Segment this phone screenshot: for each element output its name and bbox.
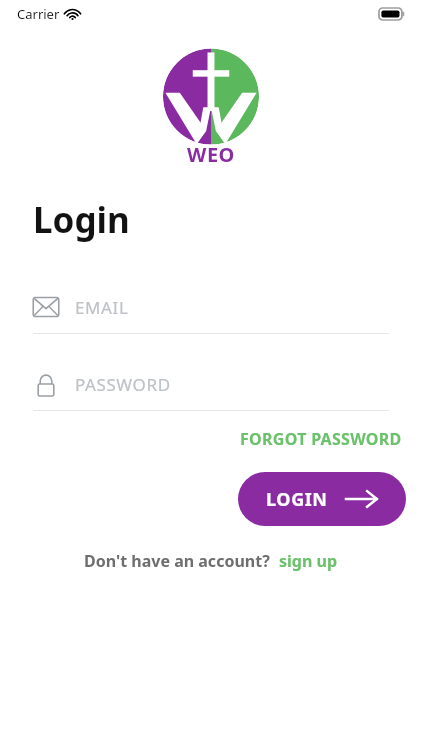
staticText: WEO xyxy=(187,141,235,168)
other: Login xyxy=(346,490,378,508)
button[interactable]: Password xyxy=(33,367,389,401)
button[interactable]: Don't have an account? xyxy=(0,550,422,572)
button[interactable]: LOGIN xyxy=(238,472,406,526)
staticText: Carrier xyxy=(17,5,60,23)
staticText: PASSWORD xyxy=(75,373,171,396)
staticText: FORGOT PASSWORD xyxy=(240,428,402,450)
staticText: Don't have an account? xyxy=(84,550,270,572)
other: Password xyxy=(33,371,59,397)
staticText: EMAIL xyxy=(75,296,129,319)
button[interactable]: FORGOT PASSWORD xyxy=(236,424,406,454)
button[interactable]: Email xyxy=(33,290,389,324)
other: Email xyxy=(33,294,59,320)
staticText: Login xyxy=(33,196,130,244)
staticText: LOGIN xyxy=(266,487,328,512)
staticText: sign up xyxy=(279,550,338,572)
